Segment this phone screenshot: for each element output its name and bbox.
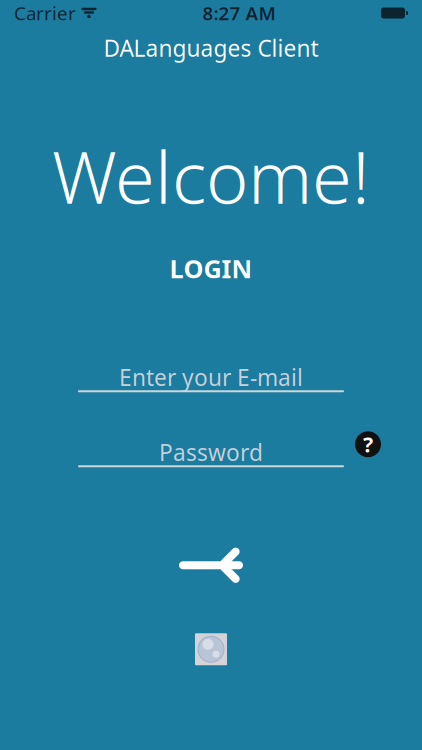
staticText: Welcome!: [52, 128, 370, 224]
button[interactable]: Enter your E-mail: [78, 363, 344, 393]
staticText: Carrier: [14, 1, 76, 25]
staticText: LOGIN: [169, 252, 252, 285]
staticText: 8:27 AM: [202, 1, 275, 25]
staticText: DALanguages Client: [103, 33, 318, 63]
button[interactable]: Help: [355, 431, 381, 457]
staticText: Password: [159, 437, 263, 467]
button[interactable]: Continue: [173, 545, 249, 585]
button[interactable]: Language: [195, 633, 227, 665]
staticText: ?: [363, 430, 373, 458]
staticText: Enter your E-mail: [119, 362, 303, 392]
button[interactable]: Password: [78, 438, 344, 468]
